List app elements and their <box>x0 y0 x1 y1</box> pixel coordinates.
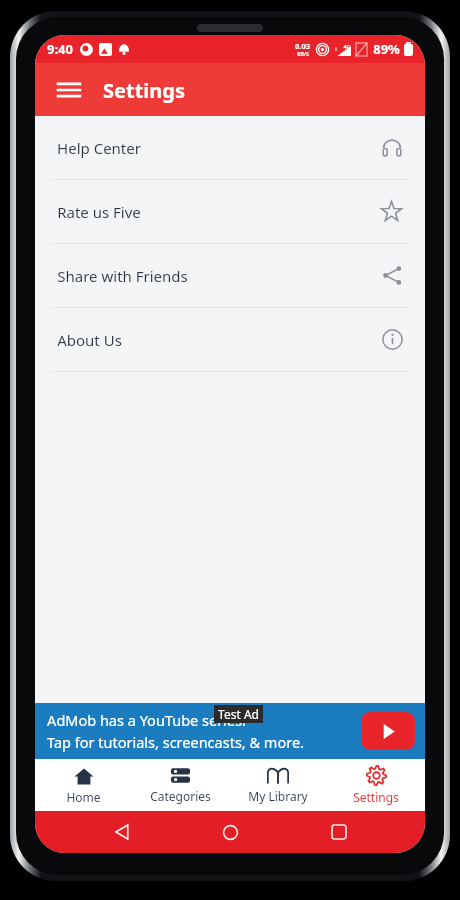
button[interactable]: Back <box>100 811 144 853</box>
staticText: Rate us Five <box>57 202 141 222</box>
staticText: 89% <box>373 40 400 58</box>
button[interactable]: Help Center <box>35 116 425 179</box>
staticText: Share with Friends <box>57 266 188 286</box>
button[interactable]: Play video ad <box>361 712 415 750</box>
staticText: 0.03 <box>295 41 310 51</box>
staticText: Categories <box>150 788 211 804</box>
button[interactable]: Rate us Five <box>35 180 425 243</box>
staticText: Help Center <box>57 138 141 158</box>
staticText: About Us <box>57 330 122 350</box>
button[interactable]: Recent apps <box>317 811 361 853</box>
button[interactable]: My Library <box>229 759 327 811</box>
staticText: Home <box>66 789 101 805</box>
button[interactable]: Share with Friends <box>35 244 425 307</box>
staticText: Tap for tutorials, screencasts, & more. <box>47 732 304 752</box>
button[interactable]: Settings <box>327 759 425 811</box>
staticText: 4G <box>343 43 351 50</box>
button[interactable]: Open navigation menu <box>47 68 91 112</box>
staticText: KB/S <box>297 51 309 58</box>
button[interactable]: About Us <box>35 308 425 371</box>
staticText: Settings <box>103 77 185 104</box>
staticText: 9:40 <box>47 40 73 58</box>
staticText: Test Ad <box>218 706 259 722</box>
staticText: My Library <box>248 788 308 804</box>
staticText: Settings <box>353 789 399 805</box>
button[interactable]: Home <box>35 759 132 811</box>
staticText: AdMob has a YouTube series! <box>47 710 246 730</box>
button[interactable]: Categories <box>132 759 229 811</box>
button[interactable]: Home <box>208 811 252 853</box>
